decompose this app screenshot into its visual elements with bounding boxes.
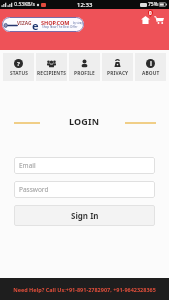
staticText: Sign In bbox=[71, 210, 99, 221]
staticText: PRIVACY bbox=[107, 70, 129, 77]
staticText: Email bbox=[19, 161, 36, 170]
button[interactable]: PRIVACY bbox=[102, 53, 133, 81]
staticText: 12:33 bbox=[77, 1, 93, 9]
button[interactable]: ? bbox=[3, 53, 34, 81]
staticText: by vizag bbox=[73, 21, 83, 25]
staticText: ABOUT bbox=[142, 70, 160, 77]
button[interactable]: Vizag eShop home bbox=[2, 17, 84, 32]
staticText: SHOP.COM bbox=[41, 19, 70, 26]
staticText: PROFILE bbox=[74, 70, 95, 77]
button[interactable]: Sign In bbox=[14, 205, 155, 226]
staticText: RECIPIENTS bbox=[37, 70, 67, 77]
button[interactable]: Password bbox=[14, 181, 155, 198]
staticText: 0.53KB/s bbox=[13, 1, 35, 8]
staticText: 75% bbox=[148, 1, 158, 8]
button[interactable]: i bbox=[135, 53, 166, 81]
staticText: VIZAG bbox=[17, 20, 32, 27]
staticText: i bbox=[150, 59, 152, 68]
staticText: Shop Now The Best Offer bbox=[42, 25, 78, 29]
staticText: 0 bbox=[149, 10, 152, 16]
staticText: STATUS bbox=[10, 70, 28, 77]
button[interactable]: Shopping cart bbox=[152, 13, 166, 27]
button[interactable]: Home bbox=[138, 13, 152, 27]
staticText: Password bbox=[19, 185, 49, 194]
staticText: e bbox=[32, 18, 39, 32]
button[interactable]: PROFILE bbox=[69, 53, 100, 81]
staticText: LOGIN bbox=[69, 115, 100, 127]
staticText: ? bbox=[17, 60, 20, 68]
button[interactable]: Email bbox=[14, 157, 155, 174]
staticText: Need Help? Call Us:+91-891-2782907, +91-… bbox=[13, 286, 156, 293]
button[interactable]: RECIPIENTS bbox=[36, 53, 67, 81]
button[interactable]: Need Help? Call Us:+91-891-2782907, +91-… bbox=[0, 278, 169, 300]
